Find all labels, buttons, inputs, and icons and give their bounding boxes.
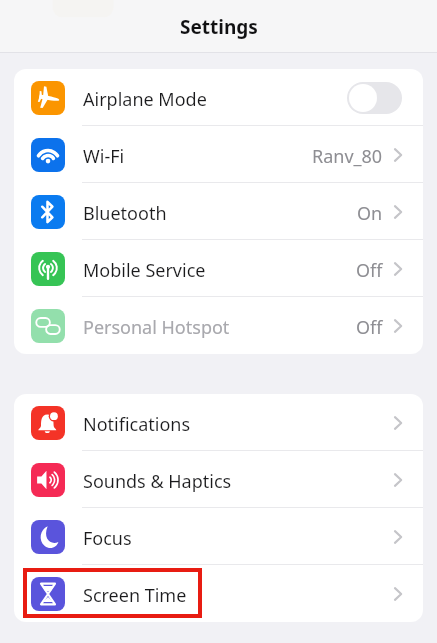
staticText: Focus [83, 526, 132, 551]
button[interactable]: Mobile Service [14, 240, 423, 297]
staticText: Off [356, 258, 383, 283]
button[interactable]: Sounds & Haptics [14, 451, 423, 508]
button[interactable]: Wi-Fi [14, 126, 423, 183]
staticText: Off [356, 315, 383, 340]
staticText: Screen Time [83, 583, 187, 608]
staticText: Airplane Mode [83, 87, 207, 112]
staticText: Bluetooth [83, 201, 167, 226]
button[interactable]: Airplane Mode [14, 69, 423, 126]
button[interactable]: Bluetooth [14, 183, 423, 240]
button[interactable]: Personal Hotspot [14, 297, 423, 354]
staticText: On [357, 201, 383, 226]
staticText: Notifications [83, 412, 191, 437]
button[interactable]: Focus [14, 508, 423, 565]
button[interactable]: Screen Time [14, 565, 423, 622]
staticText: Wi-Fi [83, 144, 125, 169]
button[interactable]: Notifications [14, 394, 423, 451]
staticText: Mobile Service [83, 258, 206, 283]
staticText: Sounds & Haptics [83, 469, 232, 494]
staticText: Settings [180, 14, 258, 40]
staticText: Ranv_80 [312, 144, 383, 169]
staticText: Personal Hotspot [83, 315, 230, 340]
button[interactable]: Airplane Mode toggle, off [347, 82, 402, 114]
